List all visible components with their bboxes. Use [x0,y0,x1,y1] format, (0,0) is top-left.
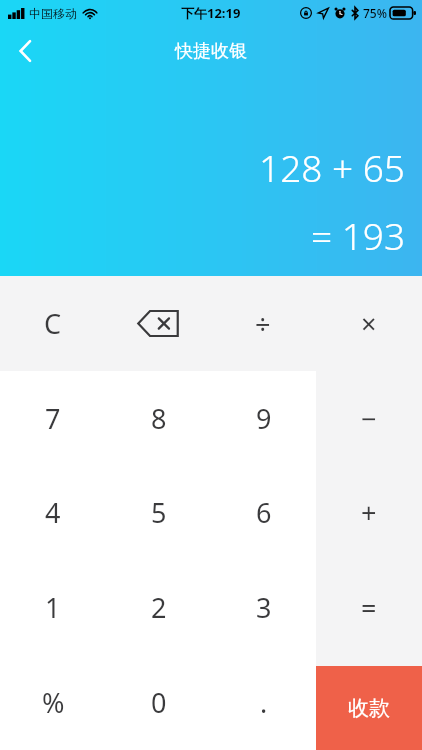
button[interactable]: 9 [211,371,316,465]
staticText: 75% [363,5,387,21]
staticText: C [44,305,62,342]
button[interactable]: 7 [0,371,106,465]
button[interactable]: 1 [0,560,106,655]
staticText: 8 [151,400,167,437]
button[interactable]: = [316,560,422,655]
staticText: 9 [256,400,272,437]
staticText: 128 + 65 [259,142,406,192]
button[interactable]: 0 [106,655,211,750]
staticText: = 193 [311,210,406,260]
button[interactable]: ÷ [210,276,316,371]
staticText: 2 [151,589,167,626]
staticText: 1 [45,589,61,626]
staticText: 快捷收银 [175,40,247,63]
button[interactable]: Back [0,26,50,76]
staticText: % [42,684,65,721]
staticText: 0 [151,684,167,721]
button[interactable]: 5 [106,465,211,560]
staticText: ÷ [255,305,271,342]
staticText: + [361,494,377,531]
staticText: 下午12:19 [181,4,241,22]
button[interactable]: 8 [106,371,211,465]
button[interactable]: 2 [106,560,211,655]
button[interactable]: − [316,371,422,465]
button[interactable]: × [316,276,422,371]
staticText: 中国移动 [29,6,77,21]
button[interactable]: C [0,276,105,371]
staticText: . [260,684,268,721]
button[interactable]: + [316,465,422,560]
staticText: 收款 [348,695,390,721]
staticText: = [361,589,377,626]
staticText: 3 [256,589,272,626]
button[interactable]: 6 [211,465,316,560]
staticText: 6 [256,494,272,531]
button[interactable]: 4 [0,465,106,560]
staticText: 5 [151,494,167,531]
button[interactable]: % [0,655,106,750]
button[interactable]: . [211,655,316,750]
staticText: − [361,400,377,437]
button[interactable]: Backspace [105,276,210,371]
button[interactable]: 收款 [316,666,422,750]
button[interactable]: 3 [211,560,316,655]
staticText: 7 [45,400,61,437]
staticText: × [361,305,377,342]
staticText: 4 [45,494,61,531]
